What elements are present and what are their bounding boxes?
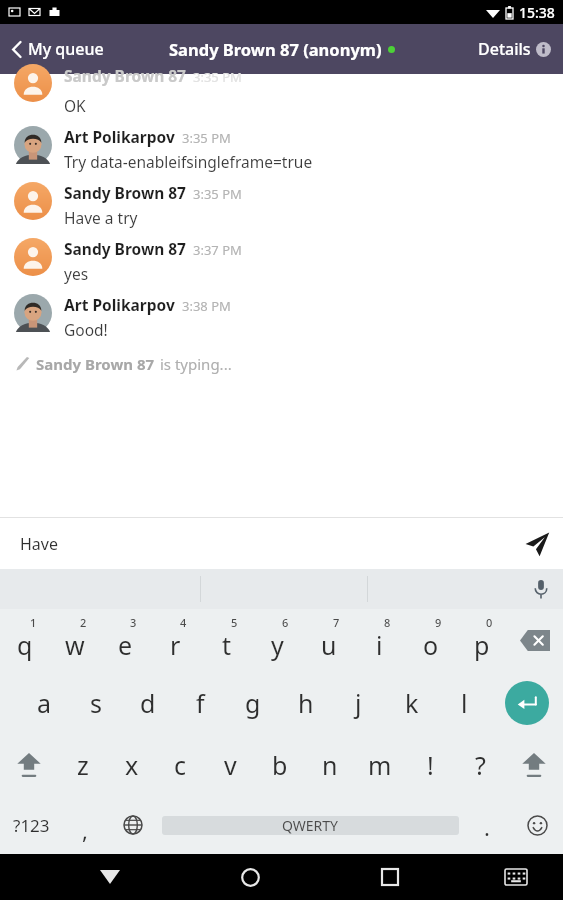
button[interactable]: 8 [354,609,405,672]
staticText: e [118,628,133,662]
button[interactable]: Back [87,854,133,900]
button[interactable]: Shift [505,734,563,796]
staticText: 2 [80,615,87,630]
staticText: 3:35 PM [193,185,242,203]
staticText: ?123 [13,814,50,837]
button[interactable]: Sandy Brown 87 [0,74,563,116]
button[interactable]: v [205,734,255,796]
button[interactable]: 5 [201,609,252,672]
button[interactable]: Sandy Brown 87 [0,172,563,228]
staticText: s [90,686,102,720]
staticText: p [474,628,490,662]
button[interactable]: Shift [0,734,58,796]
button[interactable]: ! [405,734,455,796]
staticText: Have [20,533,58,555]
staticText: c [174,748,187,782]
button[interactable]: , [62,796,108,854]
button[interactable]: Backspace [507,609,563,672]
staticText: 15:38 [519,3,555,22]
button[interactable]: 2 [50,609,100,672]
staticText: Details [478,38,531,60]
button[interactable]: 9 [405,609,456,672]
button[interactable]: l [438,672,491,734]
button[interactable]: 6 [252,609,303,672]
button[interactable]: My queue [0,30,114,68]
staticText: Sandy Brown 87 [64,65,186,86]
button[interactable]: Art Polikarpov [0,116,563,172]
button[interactable]: f [174,672,226,734]
staticText: b [272,748,288,782]
button[interactable]: Home [227,854,273,900]
staticText: Sandy Brown 87 [36,354,155,374]
staticText: t [222,628,232,662]
button[interactable]: Details [468,30,563,68]
staticText: x [125,748,139,782]
staticText: f [196,686,205,720]
button[interactable]: Recent apps [367,854,413,900]
staticText: n [322,748,338,782]
button[interactable]: d [122,672,174,734]
staticText: 3:35 PM [182,129,231,147]
staticText: Have a try [64,207,138,228]
button[interactable]: b [255,734,305,796]
staticText: QWERTY [282,816,339,835]
staticText: 6 [282,615,289,630]
button[interactable]: ?123 [0,796,62,854]
button[interactable]: s [70,672,122,734]
button[interactable]: k [385,672,438,734]
staticText: y [271,628,284,662]
button[interactable]: 4 [150,609,201,672]
staticText: . [484,812,490,842]
button[interactable]: 3 [100,609,150,672]
staticText: g [245,686,261,720]
button[interactable]: 0 [456,609,507,672]
button[interactable]: QWERTY [162,816,459,835]
button[interactable]: x [107,734,156,796]
button[interactable]: 7 [303,609,354,672]
staticText: 9 [435,615,442,630]
button[interactable]: Send [511,518,563,569]
button[interactable]: Art Polikarpov [0,284,563,340]
button[interactable]: Voice input [519,569,563,609]
staticText: ! [427,748,434,782]
button[interactable]: Have [0,533,511,555]
staticText: yes [64,263,89,284]
staticText: is typing... [160,354,232,374]
button[interactable]: n [305,734,355,796]
button[interactable]: h [279,672,332,734]
staticText: 1 [30,615,37,630]
button[interactable]: Emoji [511,796,563,854]
staticText: Sandy Brown 87 (anonym) [169,38,382,60]
staticText: v [224,748,237,782]
staticText: Good! [64,319,108,340]
button[interactable]: Switch keyboard [493,854,539,900]
staticText: a [37,686,52,720]
staticText: ? [475,748,486,782]
staticText: 0 [486,615,493,630]
staticText: o [423,628,439,662]
staticText: k [405,686,419,720]
staticText: 3:37 PM [193,241,242,259]
staticText: u [321,628,337,662]
button[interactable]: . [463,796,511,854]
staticText: w [65,628,85,662]
button[interactable]: ? [455,734,505,796]
staticText: , [82,815,88,845]
button[interactable]: c [156,734,205,796]
button[interactable]: m [355,734,405,796]
staticText: Sandy Brown 87 [64,238,186,259]
staticText: i [376,628,383,662]
staticText: Try data-enableifsingleframe=true [64,151,313,172]
button[interactable]: z [58,734,107,796]
button[interactable]: Enter [491,672,563,734]
staticText: m [368,748,392,782]
staticText: 3:35 PM [193,68,242,86]
button[interactable]: 1 [0,609,50,672]
staticText: q [17,628,33,662]
button[interactable]: Sandy Brown 87 [0,228,563,284]
button[interactable]: Change language [108,796,158,854]
button[interactable]: j [332,672,385,734]
button[interactable]: a [18,672,70,734]
button[interactable]: g [226,672,279,734]
staticText: Sandy Brown 87 [64,182,186,203]
